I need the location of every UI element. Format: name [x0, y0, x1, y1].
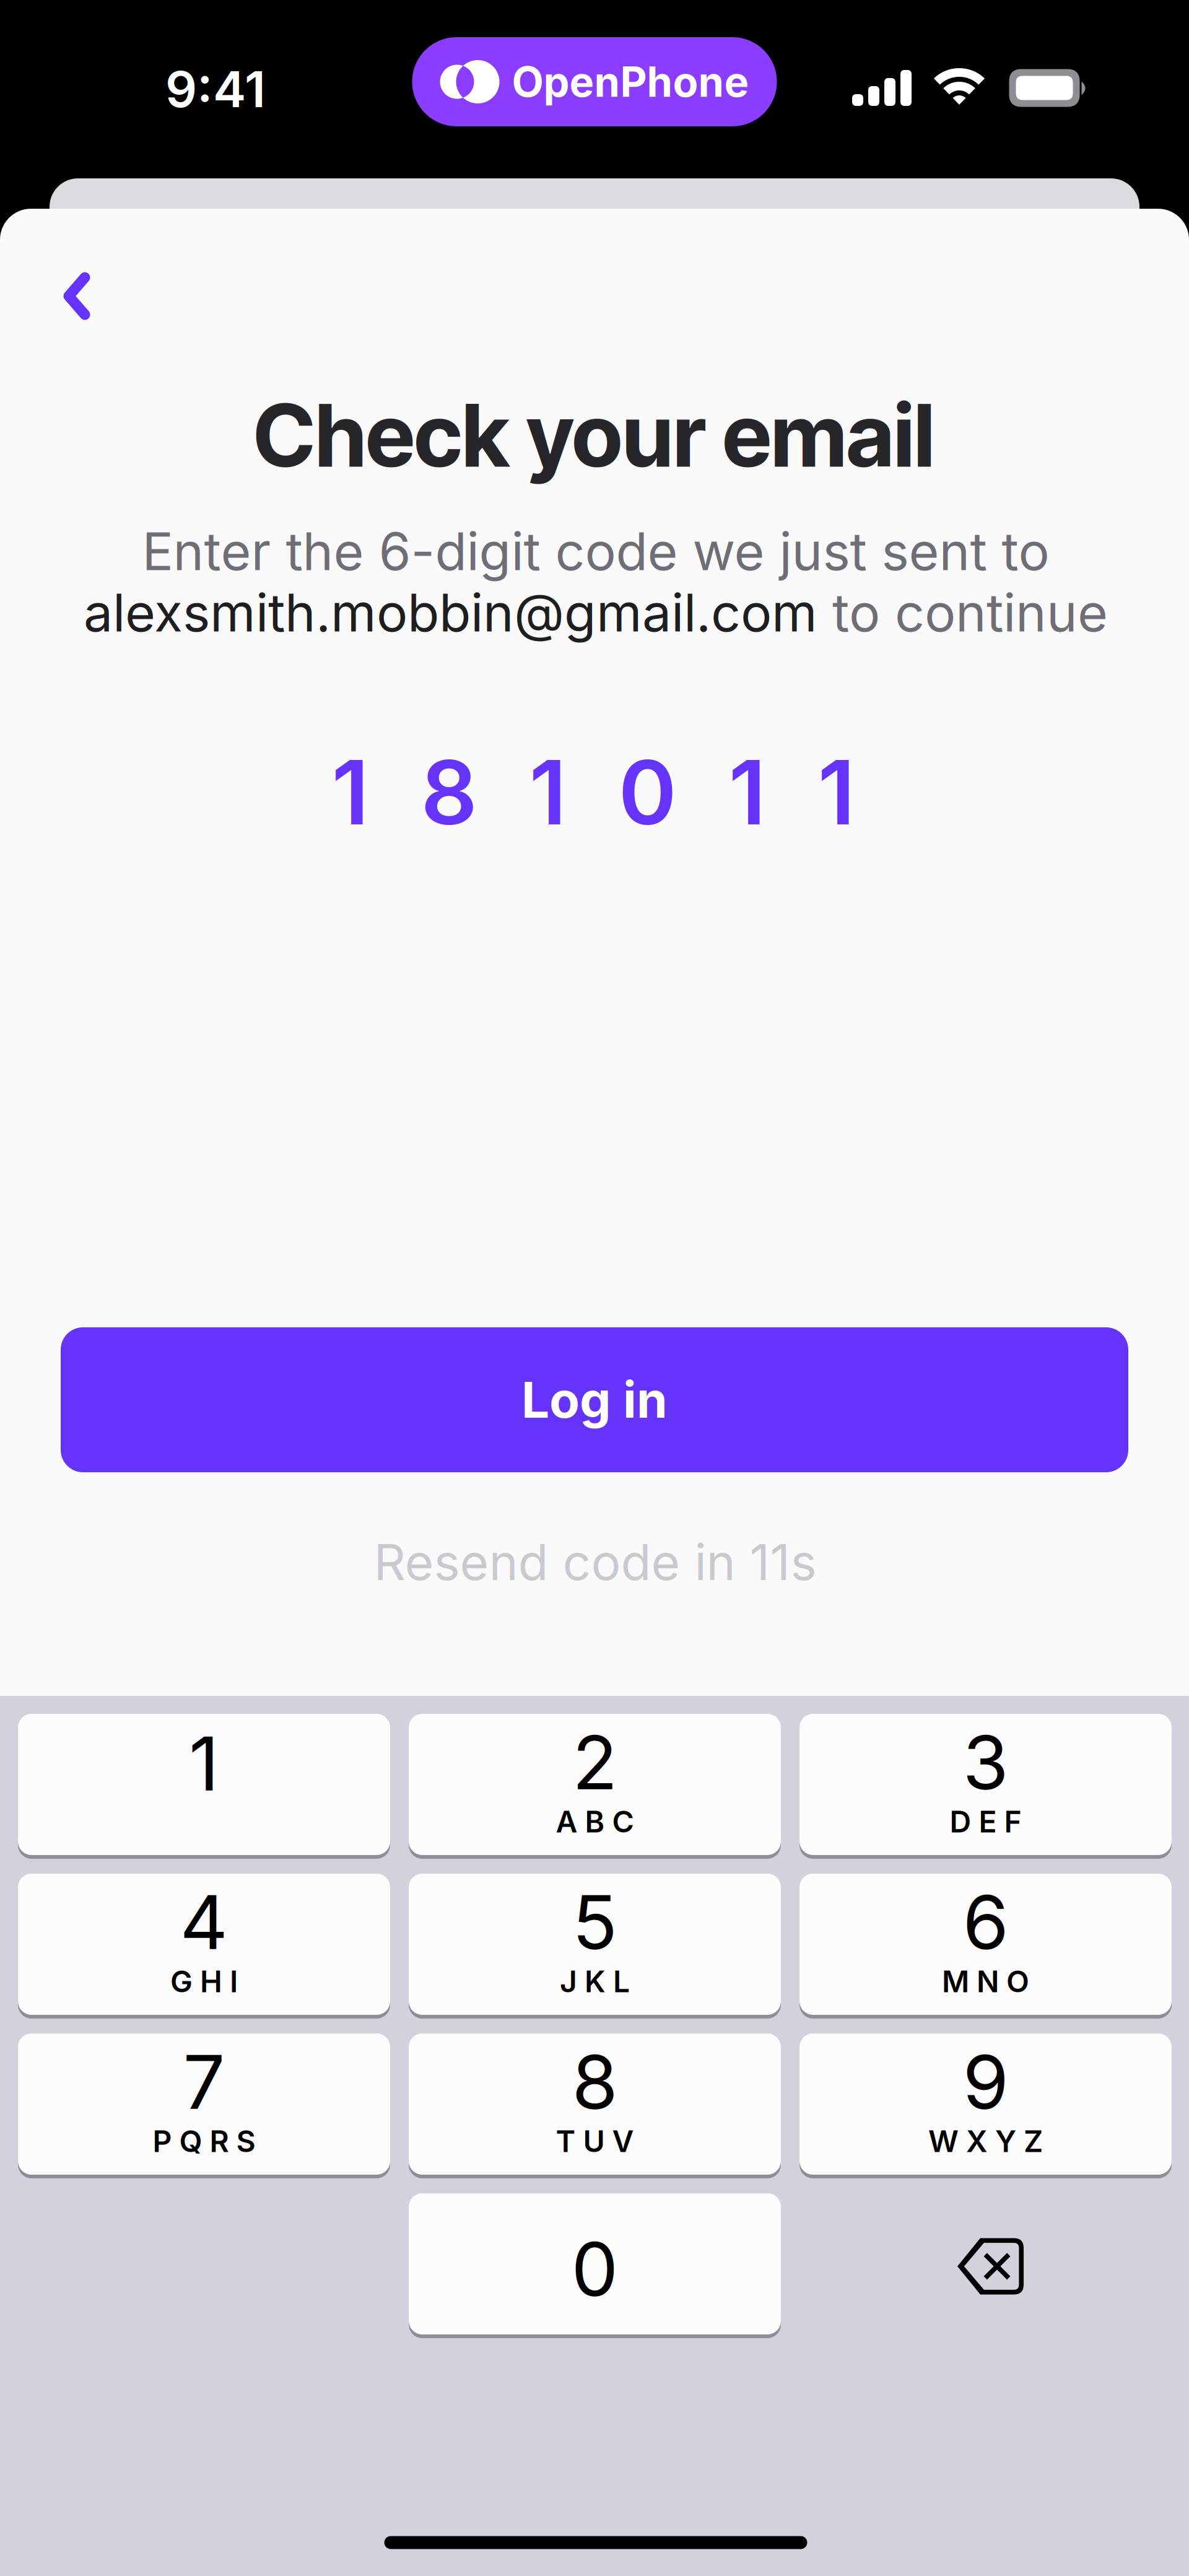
staticText: 7 [183, 2037, 225, 2127]
staticText: A B C [556, 1804, 634, 1840]
staticText: T U V [556, 2123, 634, 2159]
staticText: P Q R S [153, 2123, 255, 2159]
staticText: 0 [618, 739, 677, 846]
staticText: 6 [963, 1877, 1008, 1967]
button[interactable]: 1 [18, 1714, 390, 1855]
staticText: J K L [560, 1963, 630, 1999]
staticText: to continue [817, 581, 1108, 644]
staticText: Check your email [253, 383, 934, 487]
staticText: 9:41 [165, 59, 266, 119]
button[interactable]: Resend code in 11s [346, 1516, 844, 1608]
staticText: 1 [529, 739, 566, 846]
staticText: D E F [950, 1804, 1021, 1840]
staticText: M N O [942, 1963, 1029, 1999]
staticText: 1 [332, 739, 369, 846]
staticText: Resend code in 11s [374, 1532, 817, 1592]
staticText: 2 [572, 1717, 617, 1807]
button[interactable]: 7 [18, 2033, 390, 2175]
button[interactable]: 3 [799, 1714, 1172, 1855]
button[interactable]: 4 [18, 1874, 390, 2015]
button[interactable]: Delete [805, 2196, 1177, 2338]
button[interactable]: 0 [409, 2193, 781, 2334]
button[interactable]: Back [37, 246, 116, 346]
staticText: 1 [729, 739, 766, 846]
staticText: G H I [170, 1963, 238, 1999]
staticText: Log in [521, 1370, 668, 1430]
button[interactable]: 5 [409, 1874, 781, 2015]
button[interactable]: 6 [799, 1874, 1172, 2015]
staticText: alexsmith.mobbin@gmail.com [84, 581, 817, 644]
staticText: OpenPhone [512, 57, 749, 107]
staticText: 8 [572, 2037, 618, 2127]
button[interactable]: Log in [61, 1327, 1128, 1472]
staticText: 3 [963, 1717, 1008, 1807]
button[interactable]: 8 [409, 2033, 781, 2175]
staticText: 8 [421, 739, 477, 846]
staticText: 0 [571, 2224, 618, 2314]
staticText: 9 [963, 2037, 1008, 2127]
staticText: Enter the 6-digit code we just sent to [142, 520, 1049, 583]
staticText: 4 [180, 1877, 228, 1967]
staticText: 1 [818, 739, 855, 846]
button[interactable]: 2 [409, 1714, 781, 1855]
staticText: 5 [572, 1877, 617, 1967]
staticText: W X Y Z [928, 2123, 1043, 2159]
staticText: 1 [189, 1718, 219, 1808]
button[interactable]: 9 [799, 2033, 1172, 2175]
